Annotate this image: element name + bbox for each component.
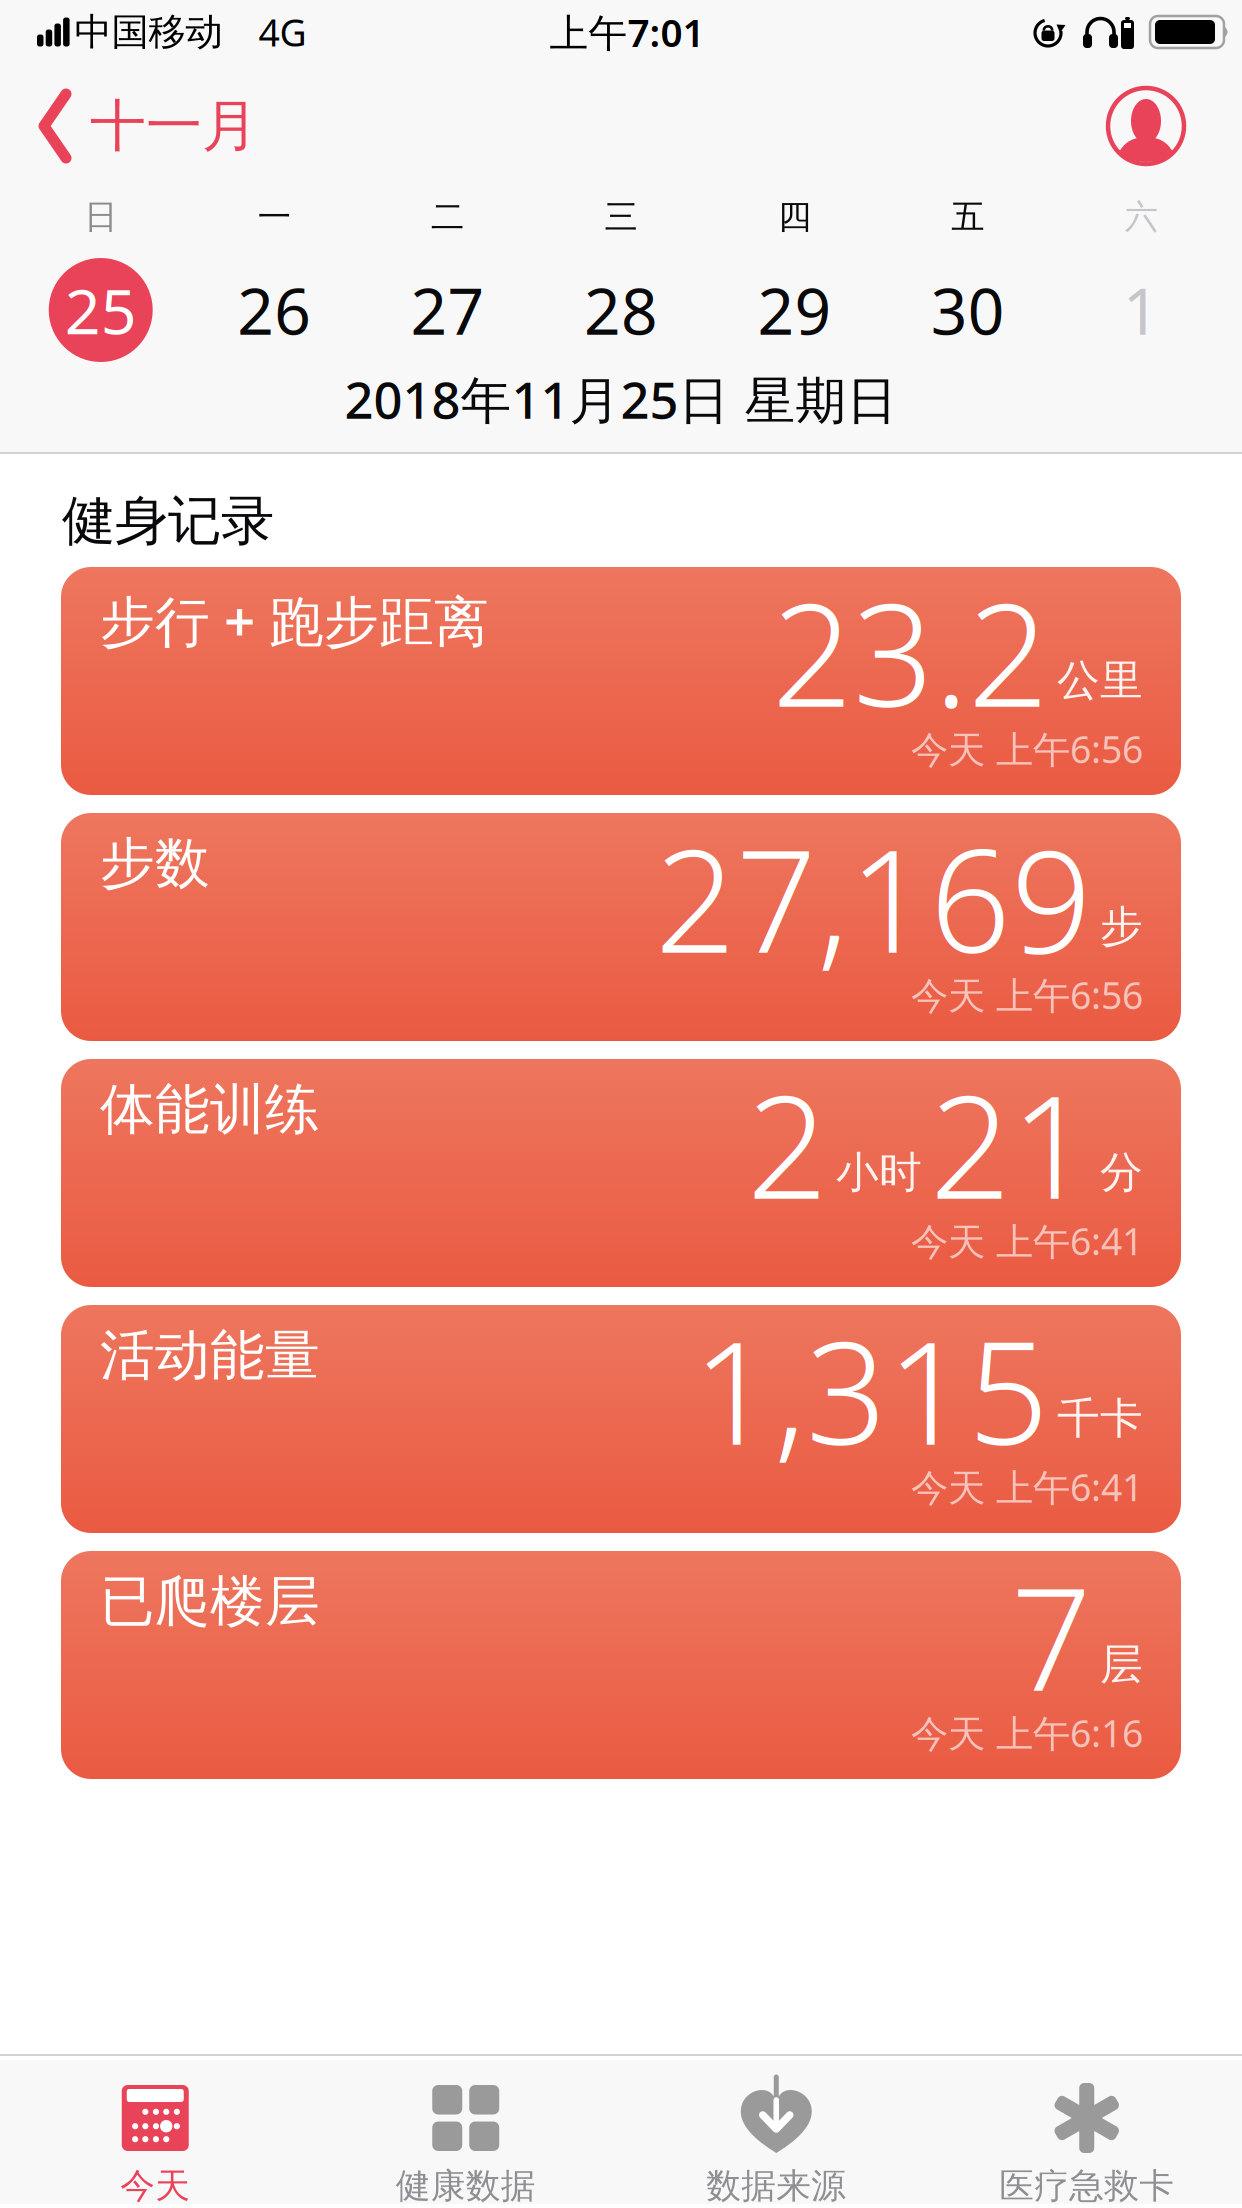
staticText: 今天 上午6:41 xyxy=(911,1216,1143,1266)
staticText: 1,315 xyxy=(693,1296,1049,1484)
staticText: 四 xyxy=(778,196,811,237)
staticText: 千卡 xyxy=(1057,1392,1143,1445)
staticText: 25 xyxy=(65,268,137,352)
staticText: 今天 上午6:56 xyxy=(911,970,1143,1020)
button[interactable]: 步行 + 跑步距离 xyxy=(61,567,1181,795)
staticText: 上午7:01 xyxy=(549,6,704,58)
staticText: 医疗急救卡 xyxy=(999,2165,1174,2207)
button[interactable]: 健康数据 xyxy=(310,2060,621,2204)
staticText: 步数 xyxy=(100,830,210,897)
button[interactable] xyxy=(1108,88,1242,164)
staticText: 体能训练 xyxy=(100,1076,320,1143)
staticText: 7 xyxy=(1011,1542,1092,1730)
staticText: 小时 xyxy=(836,1146,922,1199)
button[interactable]: 步数 xyxy=(61,813,1181,1041)
staticText: 健身记录 xyxy=(62,488,274,554)
button[interactable]: 数据来源 xyxy=(621,2060,931,2204)
staticText: 23.2 xyxy=(772,558,1049,746)
button[interactable]: 已爬楼层 xyxy=(61,1551,1181,1779)
staticText: 30 xyxy=(931,267,1005,352)
staticText: 一 xyxy=(258,196,291,237)
staticText: 今天 上午6:41 xyxy=(911,1462,1143,1512)
staticText: 2018年11月25日 星期日 xyxy=(344,365,897,433)
staticText: 29 xyxy=(757,267,831,352)
button[interactable]: 25 xyxy=(14,258,187,362)
staticText: 2 xyxy=(747,1050,828,1238)
staticText: 27 xyxy=(411,267,485,352)
staticText: 六 xyxy=(1125,196,1158,237)
staticText: 十一月 xyxy=(90,92,258,160)
staticText: 健康数据 xyxy=(396,2165,536,2207)
staticText: 中国移动 xyxy=(75,9,223,55)
button[interactable]: 1 xyxy=(1055,258,1228,362)
staticText: 三 xyxy=(604,196,637,237)
staticText: 21 xyxy=(930,1050,1092,1238)
button[interactable]: 活动能量 xyxy=(61,1305,1181,1533)
button[interactable]: 30 xyxy=(881,258,1055,362)
button[interactable]: 医疗急救卡 xyxy=(931,2060,1242,2204)
button[interactable]: 29 xyxy=(708,258,881,362)
button[interactable]: 体能训练 xyxy=(61,1059,1181,1287)
staticText: 步 xyxy=(1100,900,1143,953)
button[interactable]: 28 xyxy=(534,258,708,362)
staticText: 步行 + 跑步距离 xyxy=(100,584,489,657)
staticText: 1 xyxy=(1123,267,1160,352)
staticText: 已爬楼层 xyxy=(100,1568,320,1635)
staticText: 27,169 xyxy=(655,804,1092,992)
button[interactable]: 十一月 xyxy=(0,88,258,164)
staticText: 活动能量 xyxy=(100,1322,320,1389)
staticText: 今天 上午6:16 xyxy=(911,1708,1143,1758)
button[interactable]: 26 xyxy=(187,258,361,362)
staticText: 层 xyxy=(1100,1638,1143,1691)
staticText: 今天 上午6:56 xyxy=(911,724,1143,774)
staticText: 28 xyxy=(584,267,658,352)
staticText: 分 xyxy=(1100,1146,1143,1199)
staticText: 4G xyxy=(259,7,307,57)
button[interactable]: 27 xyxy=(361,258,534,362)
staticText: 公里 xyxy=(1057,654,1143,707)
staticText: 五 xyxy=(951,196,984,237)
staticText: 数据来源 xyxy=(706,2165,846,2207)
staticText: 二 xyxy=(431,196,464,237)
staticText: 26 xyxy=(237,267,311,352)
staticText: 日 xyxy=(84,196,117,237)
button[interactable]: 今天 xyxy=(0,2060,310,2204)
staticText: 今天 xyxy=(120,2165,190,2207)
